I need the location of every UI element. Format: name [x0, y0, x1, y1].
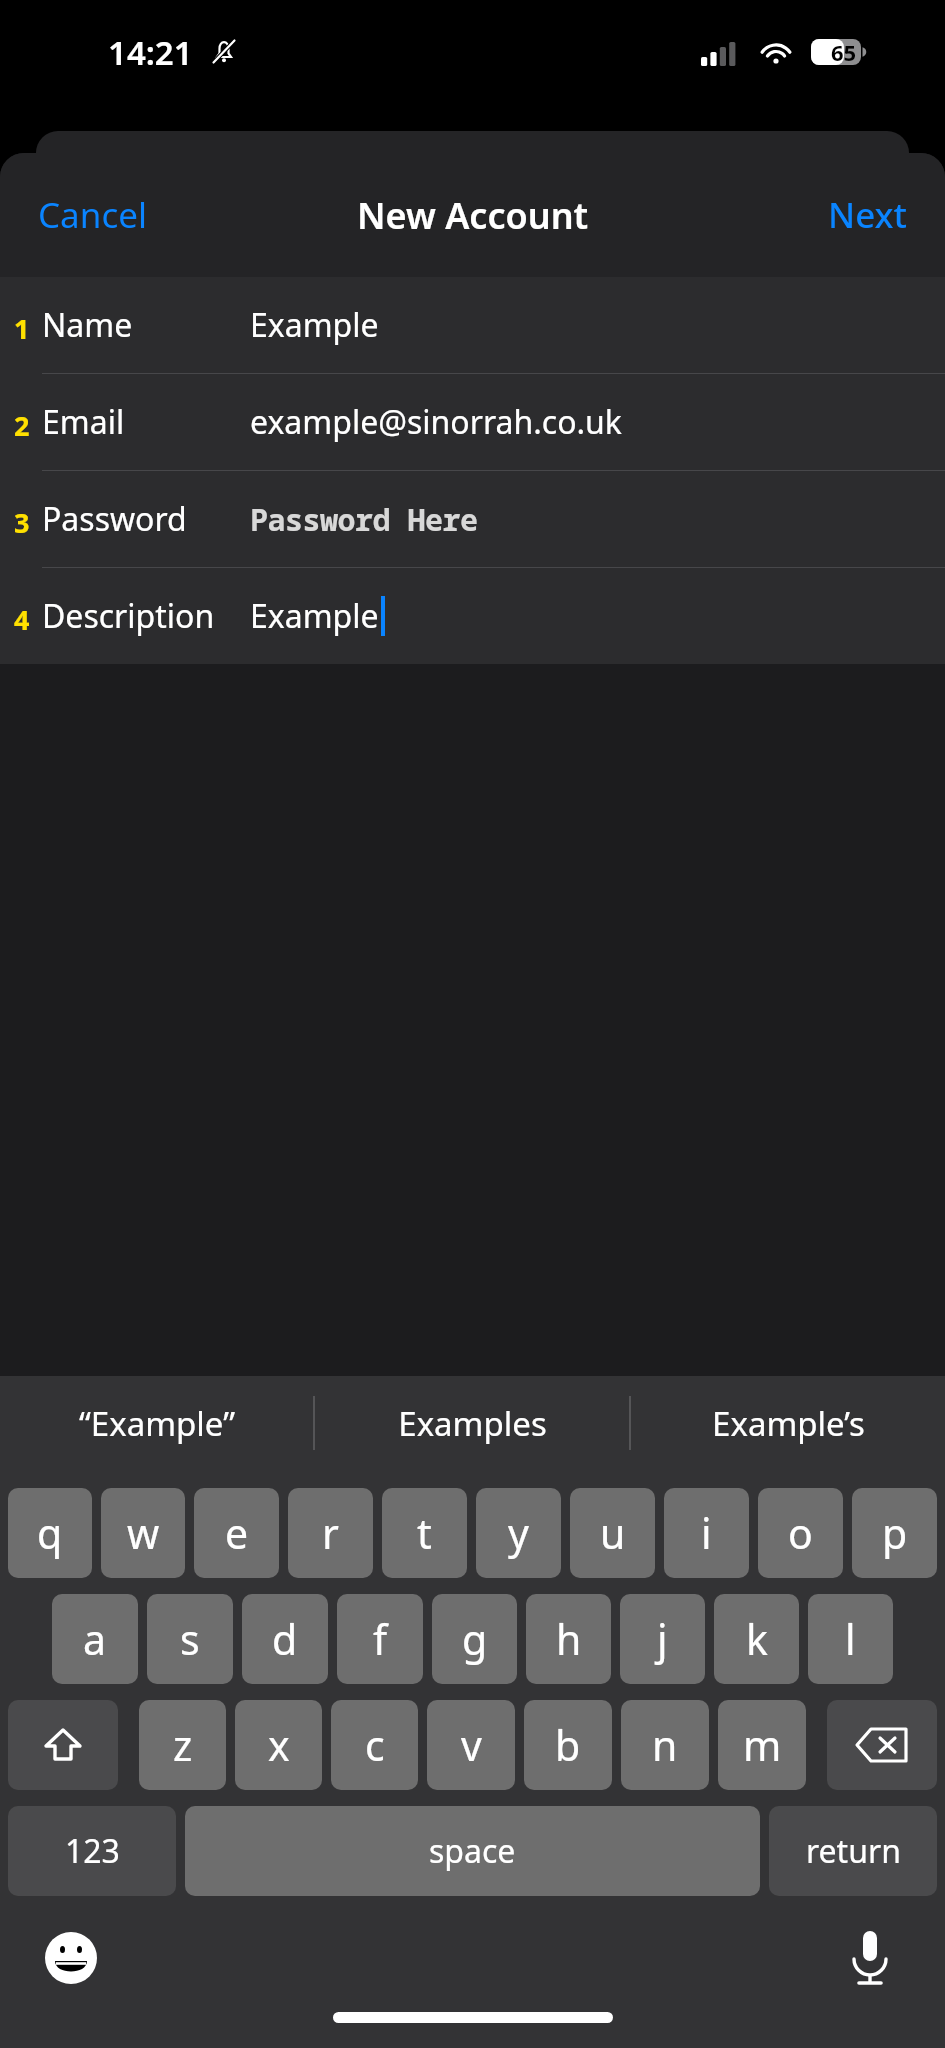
staticText: m — [743, 1717, 782, 1773]
staticText: Example — [250, 594, 379, 638]
staticText: “Example” — [79, 1401, 235, 1446]
button[interactable]: t — [382, 1488, 467, 1578]
button[interactable]: s — [147, 1594, 233, 1684]
button[interactable]: Emoji keyboard — [40, 1927, 102, 1989]
staticText: h — [556, 1611, 582, 1667]
button[interactable]: Example’s — [631, 1376, 945, 1470]
staticText: g — [462, 1611, 488, 1667]
button[interactable]: Backspace — [827, 1700, 937, 1790]
staticText: space — [429, 1829, 516, 1873]
staticText: w — [127, 1505, 160, 1561]
staticText: Name — [42, 303, 133, 347]
button[interactable]: Shift — [8, 1700, 118, 1790]
button[interactable]: space — [185, 1806, 760, 1896]
staticText: s — [180, 1611, 200, 1667]
button[interactable]: Examples — [315, 1376, 629, 1470]
button[interactable]: f — [337, 1594, 423, 1684]
staticText: p — [882, 1505, 908, 1561]
staticText: example@sinorrah.co.uk — [250, 400, 622, 444]
button[interactable]: 4 — [0, 568, 945, 664]
staticText: c — [365, 1717, 385, 1773]
staticText: y — [508, 1505, 529, 1561]
staticText: return — [806, 1829, 901, 1873]
button[interactable]: w — [101, 1488, 185, 1578]
staticText: 2 — [14, 407, 30, 444]
button[interactable]: “Example” — [0, 1376, 313, 1470]
staticText: i — [701, 1505, 712, 1561]
button[interactable]: i — [664, 1488, 749, 1578]
staticText: 123 — [65, 1829, 120, 1873]
button[interactable]: z — [139, 1700, 226, 1790]
button[interactable]: Dictation — [839, 1927, 901, 1989]
staticText: k — [746, 1611, 768, 1667]
button[interactable]: 2 — [0, 374, 945, 470]
button[interactable]: return — [769, 1806, 937, 1896]
staticText: b — [555, 1717, 581, 1773]
staticText: j — [657, 1611, 668, 1667]
button[interactable]: p — [852, 1488, 937, 1578]
button[interactable]: v — [427, 1700, 515, 1790]
button[interactable]: e — [194, 1488, 279, 1578]
button[interactable]: y — [476, 1488, 561, 1578]
staticText: Example — [250, 303, 379, 347]
staticText: z — [173, 1717, 193, 1773]
button[interactable]: 1 — [0, 277, 945, 373]
staticText: Cancel — [38, 191, 147, 239]
staticText: d — [272, 1611, 298, 1667]
staticText: q — [37, 1505, 63, 1561]
staticText: n — [652, 1717, 678, 1773]
staticText: r — [322, 1505, 339, 1561]
button[interactable]: b — [524, 1700, 612, 1790]
staticText: Next — [828, 191, 907, 239]
button[interactable]: a — [52, 1594, 138, 1684]
staticText: 14:21 — [108, 30, 193, 75]
staticText: u — [600, 1505, 626, 1561]
button[interactable]: h — [526, 1594, 611, 1684]
staticText: Email — [42, 400, 125, 444]
staticText: Password Here — [250, 499, 478, 540]
button[interactable]: r — [288, 1488, 373, 1578]
button[interactable]: Next — [790, 173, 945, 257]
staticText: x — [268, 1717, 290, 1773]
button[interactable]: n — [621, 1700, 709, 1790]
staticText: 3 — [14, 504, 30, 541]
button[interactable]: Cancel — [0, 173, 185, 257]
staticText: Examples — [398, 1401, 547, 1446]
staticText: e — [225, 1505, 249, 1561]
button[interactable]: 123 — [8, 1806, 176, 1896]
button[interactable]: k — [714, 1594, 799, 1684]
button[interactable]: c — [331, 1700, 418, 1790]
staticText: v — [461, 1717, 482, 1773]
staticText: l — [845, 1611, 856, 1667]
staticText: o — [788, 1505, 813, 1561]
staticText: t — [417, 1505, 432, 1561]
button[interactable]: q — [8, 1488, 92, 1578]
button[interactable]: m — [718, 1700, 806, 1790]
button[interactable]: d — [242, 1594, 328, 1684]
staticText: 1 — [14, 310, 30, 347]
staticText: Password — [42, 497, 187, 541]
staticText: 4 — [14, 601, 30, 638]
staticText: Description — [42, 594, 215, 638]
button[interactable]: u — [570, 1488, 655, 1578]
button[interactable]: g — [432, 1594, 517, 1684]
staticText: New Account — [357, 191, 589, 240]
button[interactable]: 3 — [0, 471, 945, 567]
staticText: a — [83, 1611, 107, 1667]
staticText: f — [373, 1611, 388, 1667]
button[interactable]: o — [758, 1488, 843, 1578]
staticText: Example’s — [712, 1401, 865, 1446]
button[interactable]: x — [235, 1700, 322, 1790]
button[interactable]: j — [620, 1594, 705, 1684]
button[interactable]: l — [808, 1594, 893, 1684]
staticText: 65 — [831, 37, 857, 67]
